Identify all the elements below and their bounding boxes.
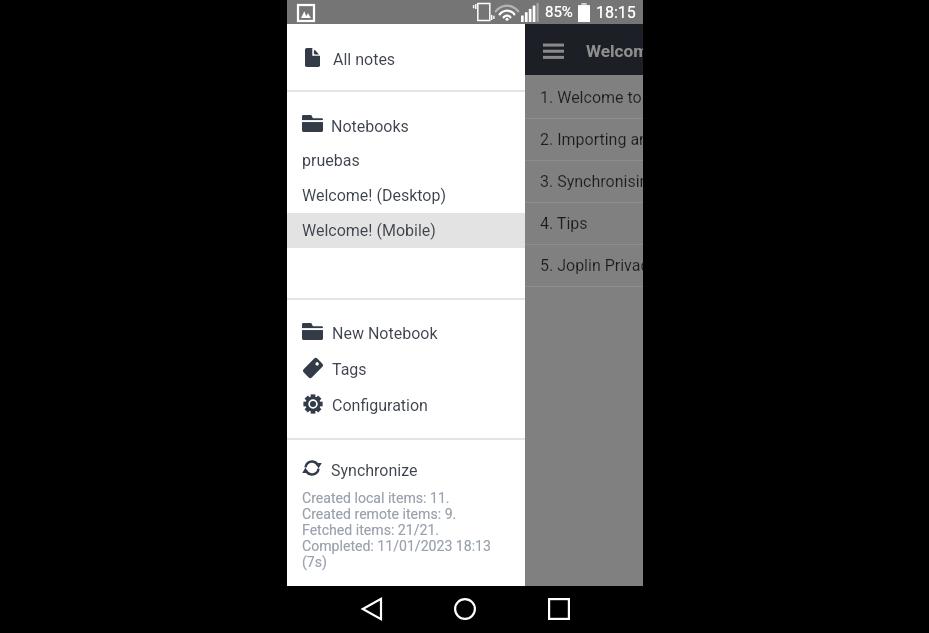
staticText: Welcome! (Desktop) xyxy=(302,186,447,205)
button[interactable]: Home xyxy=(448,592,482,626)
staticText: Welcome! (Mobile) xyxy=(586,41,643,61)
button[interactable]: Tags xyxy=(287,351,525,387)
button[interactable]: 5. Joplin Privacy Policy xyxy=(525,245,643,287)
button[interactable]: 3. Synchronising your notes xyxy=(525,161,643,203)
button[interactable]: Back xyxy=(354,592,388,626)
staticText: Notebooks xyxy=(331,117,409,136)
staticText: 18:15 xyxy=(596,3,636,22)
staticText: Created local items: 11. Created remote … xyxy=(302,490,491,570)
staticText: 4. Tips xyxy=(540,214,588,233)
staticText: New Notebook xyxy=(332,324,438,343)
staticText: 5. Joplin Privacy Policy xyxy=(540,256,643,275)
button[interactable]: Recent apps xyxy=(542,592,576,626)
staticText: 2. Importing and exporting notes xyxy=(540,130,643,149)
button[interactable]: New Notebook xyxy=(287,315,525,351)
button[interactable]: 2. Importing and exporting notes xyxy=(525,119,643,161)
staticText: pruebas xyxy=(302,151,360,170)
button[interactable]: Configuration xyxy=(287,387,525,423)
staticText: 1. Welcome to Joplin! xyxy=(540,88,643,107)
staticText: Welcome! (Mobile) xyxy=(302,221,436,240)
button[interactable]: Open navigation drawer xyxy=(539,36,567,64)
button[interactable]: 1. Welcome to Joplin! xyxy=(525,77,643,119)
staticText: 85% xyxy=(545,3,573,21)
button[interactable]: pruebas xyxy=(287,143,525,178)
button[interactable]: Welcome! (Mobile) xyxy=(287,213,525,248)
staticText: Configuration xyxy=(332,396,428,415)
button[interactable]: Synchronize xyxy=(287,455,525,485)
button[interactable]: All notes xyxy=(287,26,525,92)
staticText: 3. Synchronising your notes xyxy=(540,172,643,191)
button[interactable]: 4. Tips xyxy=(525,203,643,245)
button[interactable]: Welcome! (Desktop) xyxy=(287,178,525,213)
staticText: Synchronize xyxy=(331,461,418,480)
staticText: Tags xyxy=(332,360,367,379)
staticText: All notes xyxy=(333,50,396,69)
